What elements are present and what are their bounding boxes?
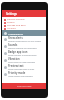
staticText: Vibration: [8, 57, 20, 61]
button[interactable]: Badge app icon: [2, 50, 46, 57]
button[interactable]: Notifications: [2, 30, 46, 36]
staticText: Account: [7, 27, 16, 30]
button[interactable]: Vibration: [2, 57, 46, 64]
staticText: Privacy: [7, 21, 15, 24]
button[interactable]: General settings: [2, 18, 46, 21]
button[interactable]: Sounds: [2, 43, 46, 50]
staticText: Display notifications on lock screen: [8, 40, 41, 43]
staticText: Priority mode: [8, 71, 26, 75]
button[interactable]: Storage and data: [2, 24, 46, 27]
button[interactable]: SAVE CHANGES: [2, 83, 46, 89]
staticText: Notifications: [8, 32, 23, 35]
staticText: Show alerts: [8, 36, 23, 40]
button[interactable]: Priority mode: [2, 71, 46, 78]
staticText: Short pulse on new message: [8, 61, 35, 64]
button[interactable]: Settings: [2, 10, 46, 17]
staticText: Show number of unread items: [8, 54, 37, 57]
staticText: Default ringtone for messages: [8, 47, 37, 50]
staticText: SAVE CHANGES: [17, 85, 32, 88]
staticText: Storage and data: [7, 24, 26, 27]
staticText: General settings: [7, 18, 25, 21]
button[interactable]: Account: [2, 27, 46, 30]
staticText: Sounds: [8, 43, 18, 47]
staticText: Show message body in alert: [8, 68, 35, 71]
staticText: Preview text: [8, 64, 24, 68]
button[interactable]: Privacy: [2, 21, 46, 24]
staticText: Badge app icon: [8, 50, 28, 54]
staticText: Allow urgent interruptions: [8, 75, 33, 78]
button[interactable]: Show alerts: [2, 36, 46, 43]
staticText: Settings: [6, 12, 17, 16]
button[interactable]: Preview text: [2, 64, 46, 71]
